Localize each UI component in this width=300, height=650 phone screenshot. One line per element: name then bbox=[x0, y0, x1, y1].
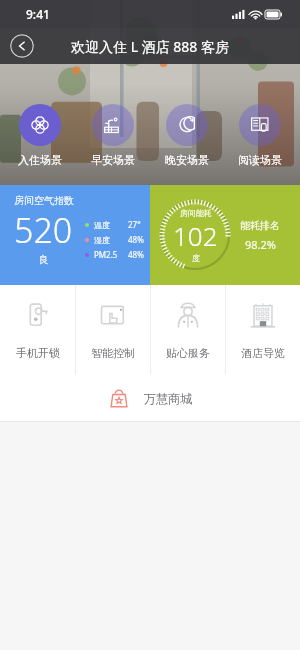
staticText: 9:41 bbox=[26, 6, 50, 22]
staticText: 能耗排名 bbox=[240, 219, 280, 232]
button[interactable]: 万慧商城 bbox=[0, 375, 300, 421]
staticText: 温度 bbox=[94, 220, 128, 230]
staticText: 入住场景 bbox=[7, 153, 73, 167]
staticText: 早安场景 bbox=[80, 153, 146, 167]
button[interactable]: 酒店导览 bbox=[226, 285, 300, 375]
button[interactable]: 晚安场景 bbox=[154, 104, 220, 167]
button[interactable]: 早安场景 bbox=[80, 104, 146, 167]
staticText: 房间能耗 bbox=[180, 208, 212, 218]
staticText: 酒店导览 bbox=[241, 346, 285, 360]
button[interactable]: Back bbox=[10, 34, 34, 58]
button[interactable]: 阅读场景 bbox=[227, 104, 293, 167]
staticText: 520 bbox=[14, 207, 73, 253]
staticText: 房间空气指数 bbox=[14, 194, 74, 207]
staticText: 晚安场景 bbox=[154, 153, 220, 167]
staticText: 贴心服务 bbox=[166, 346, 210, 360]
staticText: 手机开锁 bbox=[16, 346, 60, 360]
button[interactable]: 贴心服务 bbox=[151, 285, 225, 375]
staticText: 27° bbox=[128, 219, 141, 230]
staticText: 48% bbox=[128, 249, 144, 260]
button[interactable]: 房间空气指数 bbox=[0, 185, 150, 285]
staticText: 良 bbox=[39, 253, 49, 266]
button[interactable]: 智能控制 bbox=[76, 285, 150, 375]
button[interactable]: 房间能耗 bbox=[150, 185, 300, 285]
staticText: 万慧商城 bbox=[144, 391, 192, 406]
button[interactable]: 手机开锁 bbox=[0, 285, 75, 375]
staticText: 阅读场景 bbox=[227, 153, 293, 167]
staticText: 度 bbox=[192, 253, 200, 263]
staticText: 98.2% bbox=[245, 237, 276, 252]
staticText: 欢迎入住 L 酒店 888 客房 bbox=[71, 37, 229, 56]
staticText: 智能控制 bbox=[91, 346, 135, 360]
button[interactable]: 入住场景 bbox=[7, 104, 73, 167]
staticText: 48% bbox=[128, 234, 144, 245]
staticText: 湿度 bbox=[94, 235, 128, 245]
staticText: 102 bbox=[173, 218, 218, 253]
staticText: PM2.5 bbox=[94, 249, 128, 260]
